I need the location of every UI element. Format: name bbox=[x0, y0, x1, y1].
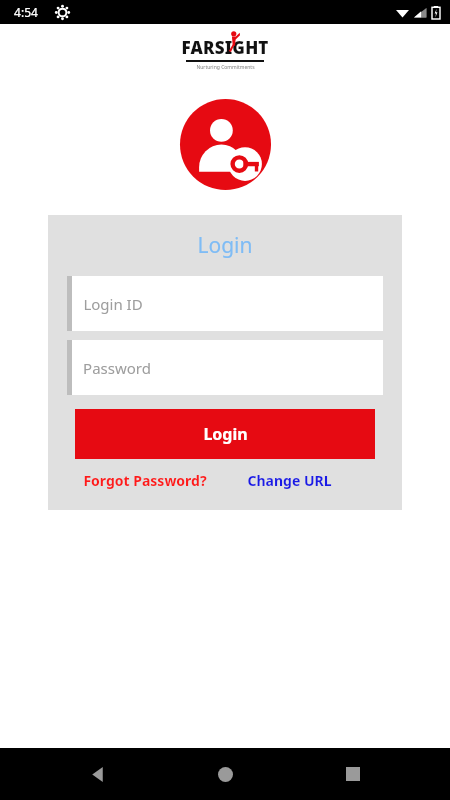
button[interactable]: Home bbox=[210, 759, 240, 789]
staticText: Login bbox=[197, 231, 253, 260]
other: User login bbox=[180, 99, 271, 190]
staticText: 4:54 bbox=[14, 4, 38, 20]
button[interactable]: Forgot Password? bbox=[75, 468, 215, 493]
button[interactable]: Password bbox=[67, 340, 383, 395]
staticText: Login ID bbox=[83, 294, 143, 314]
staticText: Change URL bbox=[247, 471, 332, 490]
button[interactable]: Login ID bbox=[67, 276, 383, 331]
staticText: FARSIGHT bbox=[181, 36, 269, 59]
staticText: Password bbox=[83, 358, 151, 378]
button[interactable]: Login bbox=[75, 409, 375, 459]
button[interactable]: Back bbox=[82, 759, 112, 789]
button[interactable]: Recent apps bbox=[338, 759, 368, 789]
staticText: Nurturing Commitments bbox=[196, 64, 255, 70]
button[interactable]: Change URL bbox=[243, 468, 336, 493]
staticText: Forgot Password? bbox=[83, 471, 207, 490]
staticText: Login bbox=[203, 423, 248, 445]
